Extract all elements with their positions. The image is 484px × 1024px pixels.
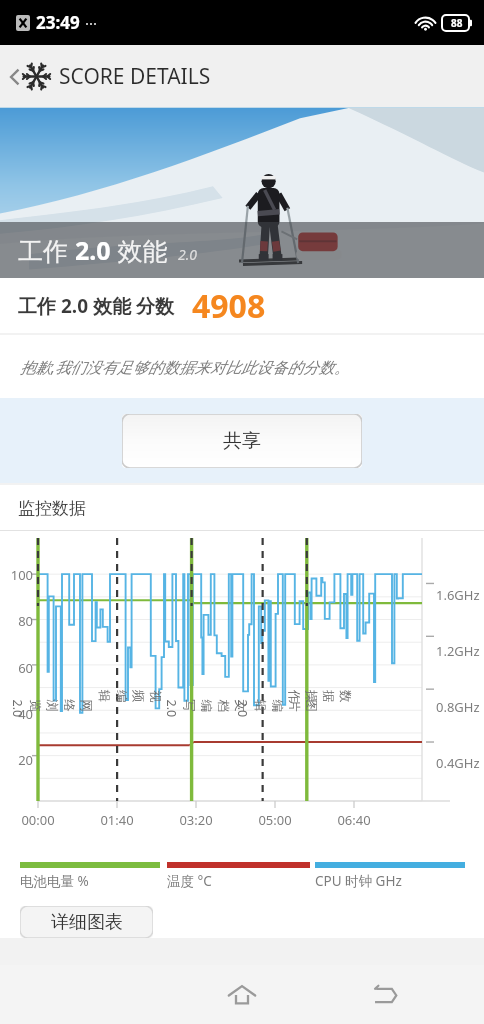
staticText: 监控数据 [18,498,86,519]
staticText: SCORE DETAILS [59,62,211,91]
staticText: 0.8GHz [436,698,480,716]
staticText: 电池电量 % [20,872,89,890]
staticText: ··· [85,13,98,33]
staticText: 23:49 [36,11,80,34]
staticText: 03:20 [174,811,218,829]
staticText: 2.0 [75,233,111,267]
staticText: 100 [3,566,33,584]
staticText: 工作 2.0 效能 分数 [18,293,174,319]
staticText: 网络浏览 2.0 [8,699,93,717]
staticText: 4908 [192,284,266,328]
staticText: CPU 时钟 GHz [315,872,402,890]
staticText: 工作 [18,233,75,267]
button[interactable]: 详细图表 [20,906,153,938]
staticText: 01:40 [95,811,139,829]
staticText: 1.2GHz [436,642,480,660]
button[interactable]: Back [8,62,211,91]
staticText: 图片编辑 2.0 [233,699,318,717]
staticText: 0.4GHz [436,754,480,772]
staticText: 效能 [111,233,168,267]
staticText: 40 [3,705,33,723]
staticText: 60 [3,659,33,677]
staticText: 温度 °C [167,872,212,890]
button[interactable]: 共享 [122,414,362,468]
staticText: 06:40 [332,811,376,829]
staticText: 1.6GHz [436,586,480,604]
staticText: 05:00 [253,811,297,829]
staticText: 共享 [223,429,261,453]
staticText: 88 [451,16,463,30]
staticText: 视频编辑 [97,690,163,708]
staticText: 抱歉,我们没有足够的数据来对比此设备的分数。 [20,356,350,377]
staticText: 文档编写 2.0 [162,699,247,717]
button[interactable]: Home [214,967,270,1023]
staticText: 数据操作 [287,690,353,708]
staticText: 20 [3,751,33,769]
staticText: 详细图表 [51,911,123,934]
staticText: 00:00 [16,811,60,829]
staticText: 80 [3,612,33,630]
staticText: 2.0 [178,245,198,264]
button[interactable]: Back [356,967,412,1023]
